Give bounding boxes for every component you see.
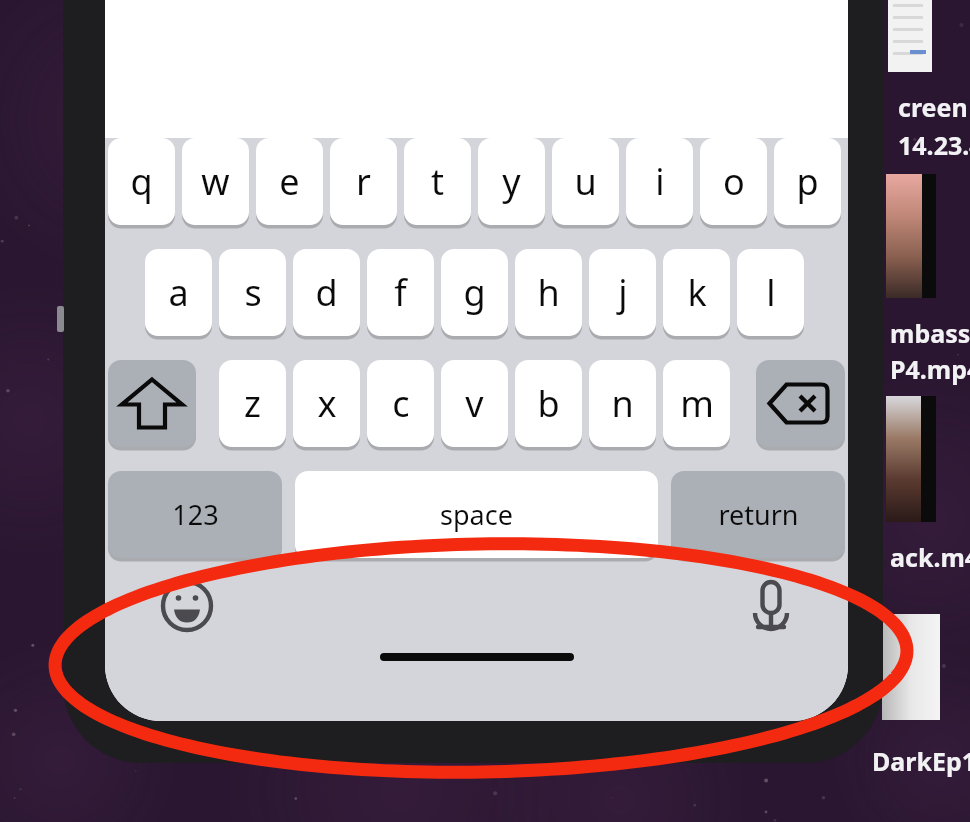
button[interactable]: y [478, 138, 545, 225]
staticText: DarkEp1 [872, 744, 970, 778]
button[interactable]: h [515, 249, 582, 336]
staticText: u [574, 157, 597, 206]
staticText: s [244, 268, 262, 317]
staticText: c [392, 379, 410, 428]
staticText: l [766, 268, 776, 317]
staticText: g [463, 268, 486, 317]
button[interactable]: o [700, 138, 767, 225]
staticText: z [244, 379, 261, 428]
staticText: space [440, 496, 513, 533]
staticText: a [168, 268, 189, 317]
button[interactable]: Shift [108, 360, 196, 447]
button[interactable]: v [441, 360, 508, 447]
button[interactable]: s [219, 249, 286, 336]
staticText: q [130, 157, 153, 206]
button[interactable]: d [293, 249, 360, 336]
staticText: e [279, 157, 300, 206]
staticText: n [611, 379, 634, 428]
button[interactable]: u [552, 138, 619, 225]
button[interactable]: Dictation [733, 568, 809, 644]
button[interactable]: j [589, 249, 656, 336]
staticText: P4.mp4 [890, 352, 970, 386]
button[interactable]: q [108, 138, 175, 225]
button[interactable]: b [515, 360, 582, 447]
staticText: 123 [172, 496, 219, 533]
button[interactable]: space [295, 471, 658, 558]
button[interactable]: i [626, 138, 693, 225]
staticText: creen S [898, 90, 970, 124]
staticText: return [718, 496, 799, 533]
button[interactable]: e [256, 138, 323, 225]
staticText: r [356, 157, 371, 206]
button[interactable]: g [441, 249, 508, 336]
button[interactable]: n [589, 360, 656, 447]
staticText: d [315, 268, 338, 317]
button[interactable]: a [145, 249, 212, 336]
staticText: mbassa [890, 316, 970, 350]
staticText: v [465, 379, 484, 428]
button[interactable]: Backspace [756, 360, 845, 447]
button[interactable]: l [737, 249, 804, 336]
button[interactable]: f [367, 249, 434, 336]
staticText: w [201, 157, 230, 206]
staticText: i [655, 157, 665, 206]
staticText: j [618, 268, 628, 317]
button[interactable]: m [663, 360, 730, 447]
button[interactable]: r [330, 138, 397, 225]
staticText: t [431, 157, 444, 206]
staticText: h [537, 268, 560, 317]
staticText: 14.23.4 [898, 128, 970, 162]
button[interactable]: t [404, 138, 471, 225]
staticText: b [537, 379, 560, 428]
staticText: k [687, 268, 707, 317]
staticText: m [680, 379, 714, 428]
button[interactable]: p [774, 138, 841, 225]
button[interactable]: w [182, 138, 249, 225]
button[interactable]: return [671, 471, 845, 558]
staticText: y [502, 157, 521, 206]
staticText: f [394, 268, 407, 317]
button[interactable]: Emoji keyboard [149, 568, 225, 644]
button[interactable]: 123 [108, 471, 282, 558]
button[interactable]: c [367, 360, 434, 447]
button[interactable]: k [663, 249, 730, 336]
staticText: p [796, 157, 819, 206]
button[interactable]: x [293, 360, 360, 447]
button[interactable]: z [219, 360, 286, 447]
staticText: o [723, 157, 745, 206]
staticText: ack.m4 [890, 540, 970, 574]
staticText: x [317, 379, 337, 428]
